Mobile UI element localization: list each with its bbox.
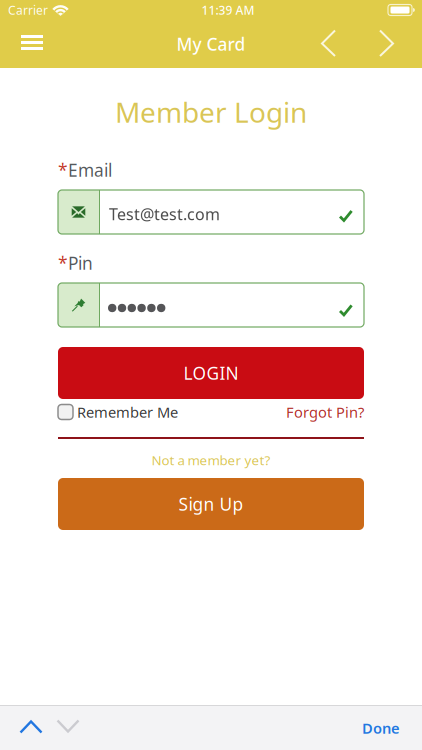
staticText: Pin	[68, 251, 93, 274]
button[interactable]: Back	[310, 20, 347, 68]
staticText: Test@test.com	[109, 203, 220, 225]
staticText: My Card	[176, 32, 245, 55]
staticText: Carrier	[8, 2, 48, 18]
button[interactable]: Done	[352, 706, 410, 750]
button[interactable]: Remember Me	[58, 403, 178, 421]
button[interactable]: Forward	[368, 20, 405, 68]
button[interactable]: Menu	[11, 20, 53, 68]
button[interactable]: Forgot Pin?	[286, 403, 364, 421]
button[interactable]: Sign Up	[58, 478, 364, 530]
staticText: Sign Up	[178, 492, 243, 515]
staticText: Not a member yet?	[151, 451, 270, 469]
staticText: Member Login	[115, 93, 307, 131]
staticText: Done	[362, 718, 400, 738]
staticText: LOGIN	[183, 361, 238, 384]
button[interactable]: LOGIN	[58, 347, 364, 399]
staticText: *	[58, 251, 68, 274]
staticText: Email	[68, 158, 112, 181]
button[interactable]: Next field	[52, 706, 84, 750]
staticText: 11:39 AM	[201, 2, 254, 18]
staticText: Forgot Pin?	[286, 402, 364, 422]
button[interactable]: Previous field	[15, 706, 47, 750]
staticText: Remember Me	[77, 402, 178, 422]
staticText: *	[58, 158, 68, 181]
